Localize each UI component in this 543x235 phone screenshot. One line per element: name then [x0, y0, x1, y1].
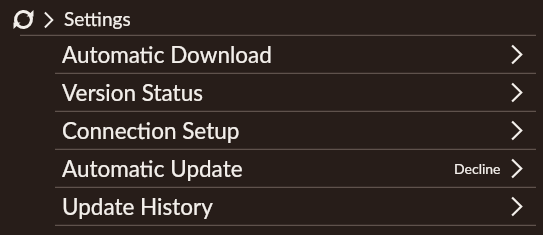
staticText: Settings [64, 7, 131, 30]
button[interactable]: Refresh [8, 3, 38, 33]
button[interactable]: Connection Setup [0, 111, 543, 149]
button[interactable]: Update History [0, 187, 543, 225]
staticText: Decline [454, 160, 501, 177]
button[interactable]: Automatic Download [0, 35, 543, 73]
staticText: Automatic Download [62, 41, 272, 68]
staticText: Version Status [62, 79, 203, 106]
staticText: Connection Setup [62, 117, 240, 144]
button[interactable]: Automatic Update [0, 149, 543, 187]
button[interactable]: Version Status [0, 73, 543, 111]
staticText: Automatic Update [62, 155, 243, 182]
staticText: Update History [62, 193, 213, 220]
